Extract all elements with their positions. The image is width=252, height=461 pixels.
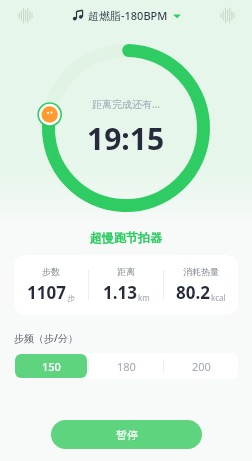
button[interactable]: 200 (164, 353, 238, 379)
staticText: km (138, 292, 150, 303)
staticText: 超慢跑节拍器 (0, 230, 252, 245)
button[interactable]: 距离 (89, 266, 163, 304)
staticText: 1107 (27, 281, 66, 304)
staticText: 暂停 (116, 428, 138, 442)
staticText: 150 (42, 359, 61, 374)
button[interactable]: Volume left (14, 4, 36, 26)
staticText: 消耗热量 (183, 266, 219, 277)
button[interactable]: 150 (15, 354, 87, 378)
staticText: 19:15 (87, 118, 165, 159)
button[interactable]: 消耗热量 (164, 266, 238, 304)
staticText: 200 (192, 359, 211, 374)
staticText: 80.2 (176, 281, 210, 304)
staticText: 超燃脂-180BPM (88, 8, 168, 23)
button[interactable]: 180 (89, 353, 163, 379)
staticText: 距离 (117, 266, 135, 277)
button[interactable]: Volume right (216, 4, 238, 26)
staticText: 步 (67, 293, 75, 303)
button[interactable]: 步数 (14, 266, 88, 304)
staticText: 距离完成还有... (92, 97, 161, 111)
button[interactable]: 暂停 (51, 420, 202, 449)
staticText: 1.13 (103, 281, 137, 304)
staticText: 180 (117, 359, 136, 374)
button[interactable]: 超燃脂-180BPM (68, 6, 185, 25)
staticText: kcal (211, 292, 226, 303)
staticText: 步频（步/分） (14, 331, 78, 345)
staticText: 步数 (42, 266, 60, 277)
